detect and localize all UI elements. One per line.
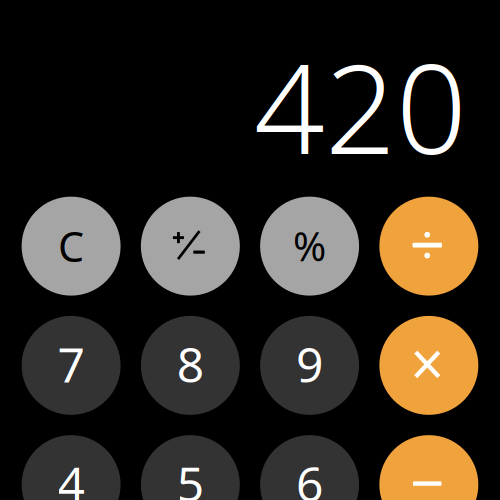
staticText: 9: [296, 332, 323, 396]
button[interactable]: Plus Minus: [141, 197, 240, 296]
button[interactable]: 9: [260, 316, 359, 415]
button[interactable]: C: [22, 197, 121, 296]
staticText: 5: [177, 451, 204, 500]
button[interactable]: 5: [141, 435, 240, 500]
button[interactable]: %: [260, 197, 359, 296]
button[interactable]: 7: [22, 316, 121, 415]
button[interactable]: Minus: [379, 435, 478, 500]
staticText: 7: [58, 332, 85, 396]
staticText: 4: [58, 451, 85, 500]
button[interactable]: 8: [141, 316, 240, 415]
staticText: 6: [296, 451, 323, 500]
button[interactable]: Multiply: [379, 316, 478, 415]
button[interactable]: Divide: [379, 197, 478, 296]
staticText: C: [58, 218, 84, 273]
staticText: 8: [177, 332, 204, 396]
button[interactable]: 6: [260, 435, 359, 500]
staticText: 420: [254, 24, 467, 188]
button[interactable]: 4: [22, 435, 121, 500]
staticText: %: [293, 219, 326, 272]
